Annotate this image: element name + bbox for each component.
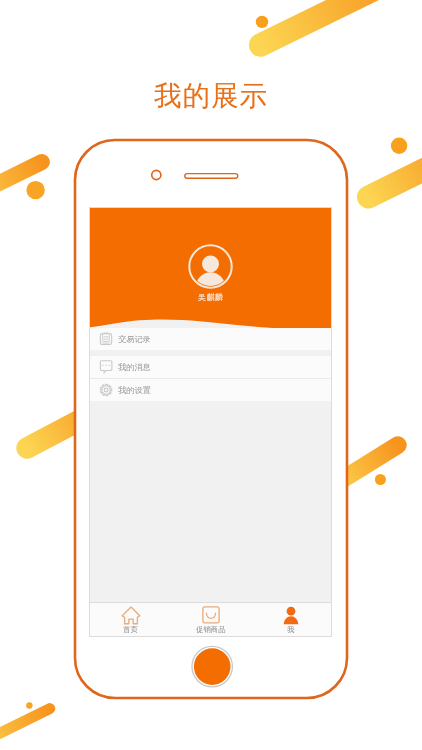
button[interactable]: 我的设置 xyxy=(90,379,331,401)
staticText: 我的设置 xyxy=(118,385,151,395)
button[interactable]: 交易记录 xyxy=(90,328,331,350)
staticText: 交易记录 xyxy=(118,334,151,344)
staticText: 吴麒麟 xyxy=(198,292,224,302)
staticText: 我的展示 xyxy=(0,79,422,114)
button[interactable]: 我 xyxy=(251,603,331,636)
staticText: 我 xyxy=(287,625,295,634)
button[interactable]: 促销商品 xyxy=(171,603,251,636)
staticText: 首页 xyxy=(123,625,138,634)
staticText: 我的消息 xyxy=(118,362,151,372)
button[interactable]: 我的消息 xyxy=(90,356,331,378)
staticText: 促销商品 xyxy=(196,625,226,634)
button[interactable]: 首页 xyxy=(90,603,171,636)
